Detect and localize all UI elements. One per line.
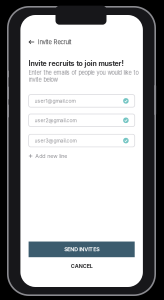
staticText: Invite Recruit xyxy=(38,38,72,46)
button[interactable]: SEND INVITES xyxy=(29,241,135,257)
staticText: user3@gmail.com xyxy=(35,137,77,144)
staticText: Invite recruits to join muster! xyxy=(29,59,124,68)
staticText: user1@gmail.com xyxy=(35,98,76,104)
staticText: user2@gmail.com xyxy=(35,117,77,123)
staticText: Enter the emails of people you would lik… xyxy=(29,69,139,76)
button[interactable]: Invite Recruit xyxy=(20,35,143,48)
staticText: CANCEL xyxy=(71,263,93,269)
staticText: SEND INVITES xyxy=(64,246,99,253)
staticText: Add new line xyxy=(35,153,67,159)
button[interactable]: CANCEL xyxy=(20,261,143,270)
staticText: invite below xyxy=(29,76,59,83)
button[interactable]: Add new line xyxy=(20,151,143,160)
